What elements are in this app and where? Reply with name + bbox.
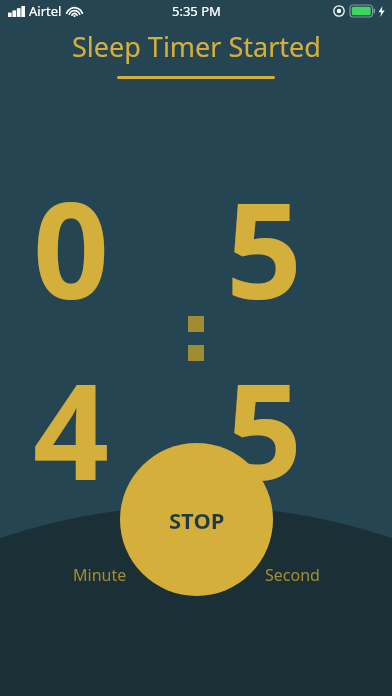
staticText: STOP (169, 505, 225, 535)
staticText: Sleep Timer Started (72, 28, 321, 65)
button[interactable]: STOP (120, 443, 273, 596)
staticText: Minute (73, 564, 127, 586)
staticText: 55 (226, 157, 359, 519)
staticText: 04 (33, 157, 166, 519)
staticText: 5:35 PM (172, 2, 221, 20)
staticText: Second (265, 564, 320, 586)
staticText: Airtel (29, 2, 62, 20)
